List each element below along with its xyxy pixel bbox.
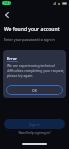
staticText: Error [7,56,18,62]
staticText: Enter your password to sign in [4,37,55,42]
button[interactable]: Need help signing in? [18,131,51,135]
staticText: We are experiencing technical difficulti… [7,63,65,78]
staticText: We found your account [4,26,60,33]
staticText: Sign in [29,122,41,127]
button[interactable]: Back [1,9,13,21]
button[interactable]: OK [6,85,63,95]
button[interactable]: Sign in [4,119,65,129]
staticText: OK [32,88,37,93]
staticText: 9:41 [4,1,10,5]
